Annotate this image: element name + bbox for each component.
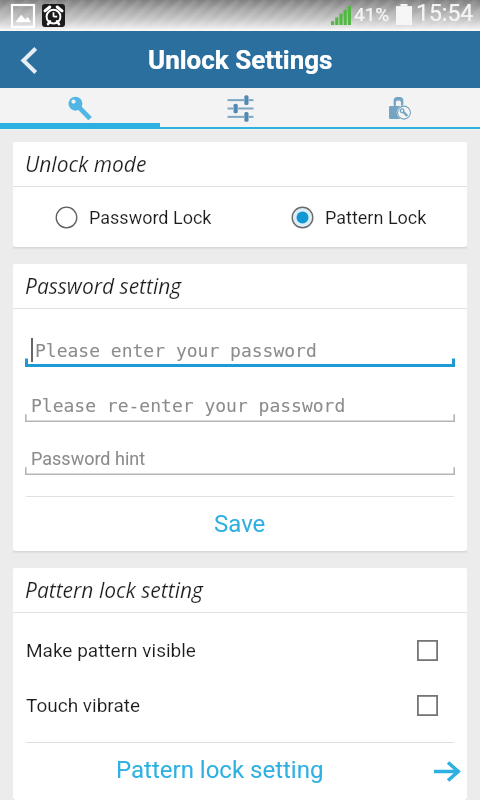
button[interactable]: Password [0,88,160,123]
button[interactable]: Settings [160,88,320,123]
button[interactable]: Pattern lock setting [13,743,467,800]
staticText: Password Lock [89,207,212,228]
staticText: Password hint [31,448,146,469]
staticText: Unlock Settings [148,45,333,75]
button[interactable]: Back [0,31,58,88]
staticText: Touch vibrate [26,694,417,716]
button[interactable]: Make pattern visible [13,623,467,677]
button[interactable]: Save [13,497,467,551]
staticText: Make pattern visible [26,639,417,661]
staticText: 41% [354,3,390,25]
staticText: 15:54 [416,0,474,27]
staticText: Pattern Lock [325,207,427,228]
button[interactable]: Password Lock [55,193,212,241]
staticText: Please re-enter your password [31,395,346,416]
button[interactable]: Touch vibrate [13,678,467,732]
staticText: Save [214,510,266,538]
staticText: Pattern lock setting [25,576,203,605]
staticText: Password setting [25,272,182,301]
button[interactable]: Lock options [320,88,480,123]
staticText: Please enter your password [35,340,317,361]
staticText: Unlock mode [25,150,147,179]
staticText: Pattern lock setting [116,756,324,784]
button[interactable]: Pattern Lock [291,193,427,241]
